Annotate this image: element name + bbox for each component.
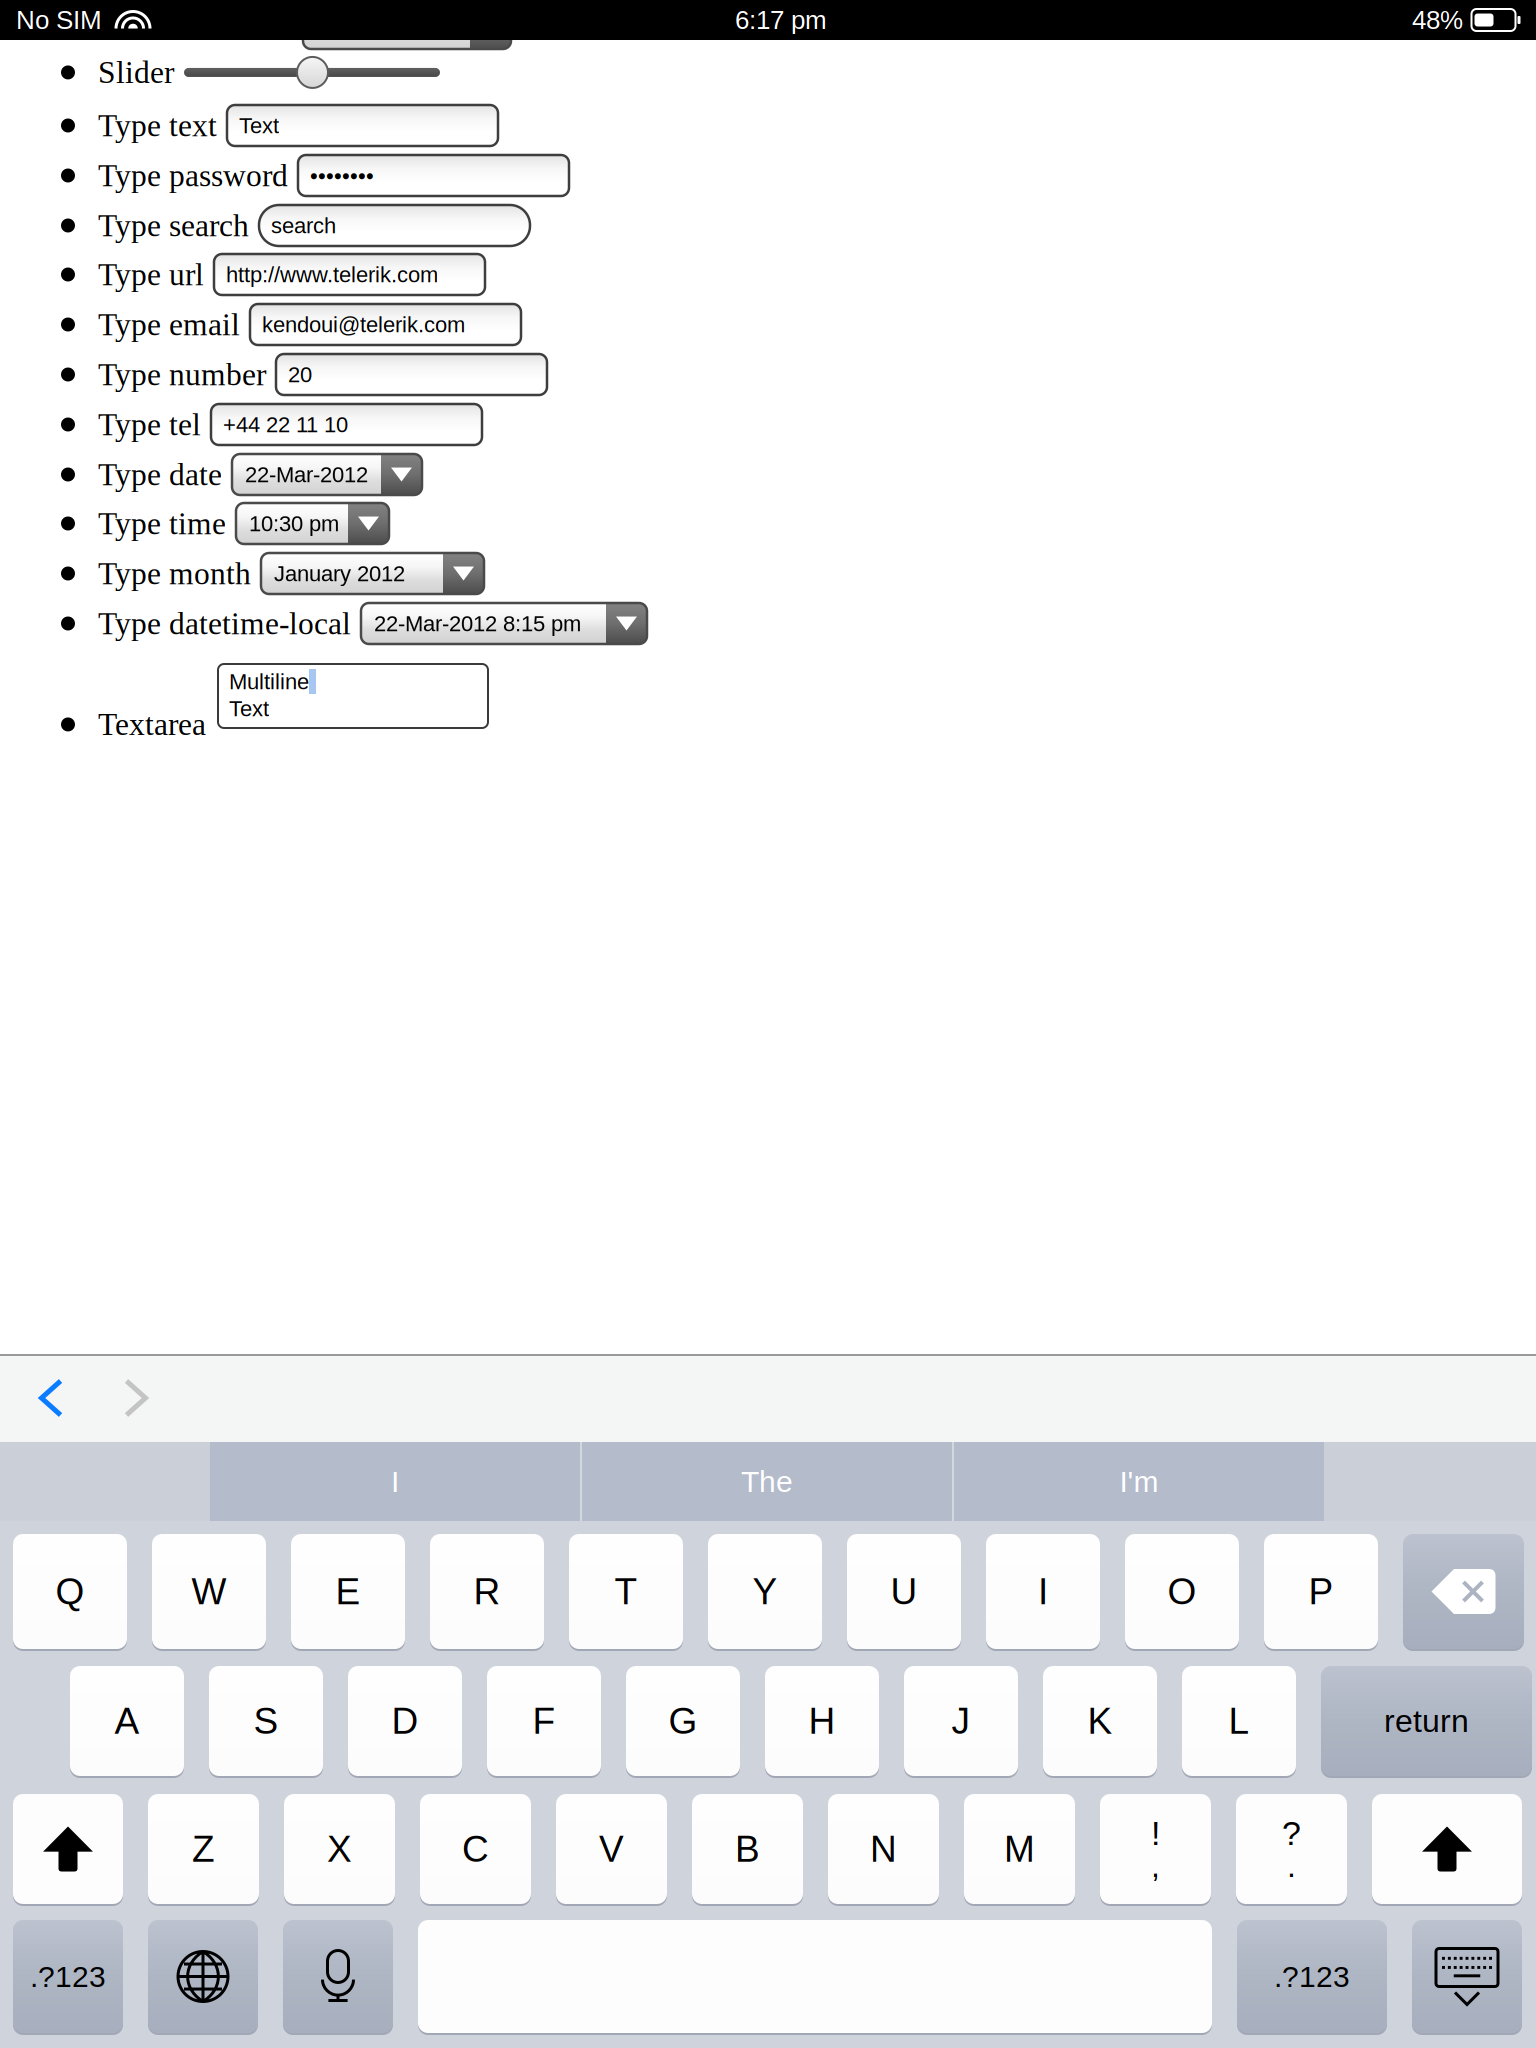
button[interactable]: H: [765, 1666, 879, 1776]
button[interactable]: .?123: [13, 1920, 123, 2033]
staticText: I'm: [1119, 1465, 1158, 1498]
button[interactable]: The: [582, 1442, 952, 1521]
staticText: Text: [239, 113, 279, 138]
button[interactable]: Next keyboard: [148, 1920, 258, 2033]
button[interactable]: T: [569, 1534, 683, 1649]
button[interactable]: B: [692, 1794, 803, 1904]
button[interactable]: J: [904, 1666, 1018, 1776]
button[interactable]: G: [626, 1666, 740, 1776]
button[interactable]: I: [986, 1534, 1100, 1649]
button[interactable]: I'm: [954, 1442, 1324, 1521]
button[interactable]: N: [828, 1794, 939, 1904]
staticText: Type time: [98, 506, 226, 541]
staticText: .: [1287, 1848, 1296, 1884]
button[interactable]: ?: [1236, 1794, 1347, 1904]
button[interactable]: L: [1182, 1666, 1296, 1776]
staticText: F: [532, 1700, 555, 1742]
staticText: B: [735, 1828, 760, 1870]
button[interactable]: return: [1321, 1666, 1532, 1776]
button[interactable]: Dictate: [283, 1920, 393, 2033]
staticText: January 2012: [274, 561, 405, 586]
staticText: Text: [229, 696, 269, 721]
staticText: search: [271, 213, 336, 238]
staticText: No SIM: [16, 5, 102, 34]
staticText: ••••••••: [310, 163, 374, 188]
staticText: Y: [752, 1571, 777, 1612]
staticText: Type number: [98, 357, 266, 392]
staticText: ,: [1151, 1848, 1160, 1884]
staticText: kendoui@telerik.com: [262, 312, 465, 337]
button[interactable]: Y: [708, 1534, 822, 1649]
button[interactable]: Next field: [106, 1354, 166, 1442]
staticText: return: [1384, 1703, 1469, 1739]
button[interactable]: Hide keyboard: [1412, 1920, 1522, 2033]
staticText: L: [1228, 1700, 1249, 1742]
staticText: Type text: [98, 108, 217, 143]
button[interactable]: M: [964, 1794, 1075, 1904]
staticText: 48%: [1412, 5, 1463, 34]
staticText: O: [1167, 1571, 1196, 1612]
staticText: I: [1038, 1571, 1048, 1612]
staticText: P: [1308, 1571, 1333, 1612]
staticText: S: [253, 1700, 278, 1742]
staticText: R: [473, 1571, 500, 1612]
button[interactable]: !: [1100, 1794, 1211, 1904]
staticText: Type month: [98, 556, 251, 591]
staticText: Z: [192, 1828, 215, 1870]
button[interactable]: O: [1125, 1534, 1239, 1649]
staticText: A: [114, 1700, 139, 1742]
staticText: 10:30 pm: [249, 511, 339, 536]
staticText: D: [391, 1700, 418, 1742]
staticText: Type date: [98, 457, 222, 492]
button[interactable]: E: [291, 1534, 405, 1649]
staticText: X: [327, 1828, 352, 1870]
button[interactable]: S: [209, 1666, 323, 1776]
button[interactable]: X: [284, 1794, 395, 1904]
staticText: Textarea: [98, 707, 206, 742]
staticText: C: [462, 1828, 489, 1870]
staticText: 20: [288, 362, 312, 387]
button[interactable]: Z: [148, 1794, 259, 1904]
staticText: Type email: [98, 307, 240, 342]
staticText: http://www.telerik.com: [226, 262, 438, 287]
staticText: Multiline: [229, 669, 309, 694]
button[interactable]: R: [430, 1534, 544, 1649]
button[interactable]: Previous field: [21, 1354, 81, 1442]
staticText: Type search: [98, 208, 249, 243]
staticText: H: [808, 1700, 835, 1742]
staticText: The: [741, 1465, 793, 1498]
button[interactable]: P: [1264, 1534, 1378, 1649]
staticText: +44 22 11 10: [223, 412, 348, 437]
button[interactable]: W: [152, 1534, 266, 1649]
staticText: Type password: [98, 158, 288, 193]
staticText: G: [668, 1700, 697, 1742]
staticText: J: [951, 1700, 970, 1742]
staticText: Type url: [98, 257, 204, 292]
staticText: N: [870, 1828, 897, 1870]
button[interactable]: .?123: [1237, 1920, 1387, 2033]
button[interactable]: Shift: [1372, 1794, 1522, 1904]
button[interactable]: D: [348, 1666, 462, 1776]
button[interactable]: I: [210, 1442, 580, 1521]
staticText: Q: [55, 1571, 84, 1612]
staticText: !: [1151, 1814, 1160, 1852]
staticText: .?123: [30, 1960, 106, 1993]
button[interactable]: F: [487, 1666, 601, 1776]
button[interactable]: A: [70, 1666, 184, 1776]
button[interactable]: V: [556, 1794, 667, 1904]
staticText: .?123: [1274, 1960, 1350, 1993]
button[interactable]: Delete: [1403, 1534, 1524, 1649]
staticText: Type datetime-local: [98, 606, 351, 641]
button[interactable]: C: [420, 1794, 531, 1904]
button[interactable]: U: [847, 1534, 961, 1649]
button[interactable]: Shift: [13, 1794, 123, 1904]
staticText: I: [391, 1465, 399, 1498]
staticText: Type tel: [98, 407, 201, 442]
staticText: M: [1004, 1828, 1035, 1870]
button[interactable]: Q: [13, 1534, 127, 1649]
button[interactable]: K: [1043, 1666, 1157, 1776]
staticText: E: [335, 1571, 360, 1612]
staticText: V: [599, 1828, 624, 1870]
staticText: Slider: [98, 55, 174, 90]
